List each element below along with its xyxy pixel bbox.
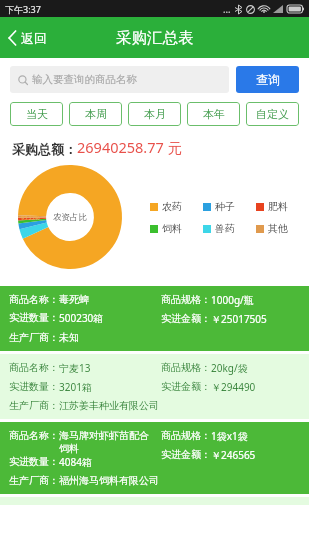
button[interactable]: 查询 bbox=[236, 66, 299, 93]
staticText: ￥246565 bbox=[211, 448, 256, 462]
staticText: ￥25017505 bbox=[211, 312, 267, 326]
staticText: 兽药 bbox=[215, 222, 235, 235]
staticText: 生产厂商： bbox=[9, 474, 59, 487]
staticText: 500230箱 bbox=[59, 311, 104, 325]
staticText: 采购总额： bbox=[12, 141, 77, 157]
staticText: 生产厂商： bbox=[9, 399, 59, 412]
staticText: 商品名称： bbox=[9, 429, 59, 442]
staticText: 未知 bbox=[59, 331, 79, 344]
staticText: 农资占比 bbox=[53, 212, 87, 223]
button[interactable]: 输入要查询的商品名称 bbox=[10, 66, 229, 93]
staticText: 肥料 bbox=[268, 200, 288, 213]
staticText: 宁麦13 bbox=[59, 361, 91, 375]
staticText: 本周 bbox=[85, 107, 107, 121]
staticText: 下午3:37 bbox=[5, 3, 41, 15]
staticText: 福州海马饲料有限公司 bbox=[59, 474, 159, 487]
staticText: 实进数量： bbox=[9, 311, 59, 324]
staticText: 4084箱 bbox=[59, 455, 92, 469]
staticText: 种子 bbox=[215, 200, 235, 213]
staticText: 输入要查询的商品名称 bbox=[32, 73, 137, 86]
button[interactable]: 本年 bbox=[187, 102, 240, 126]
staticText: 毒死蜱 bbox=[59, 293, 89, 306]
staticText: 返回 bbox=[21, 30, 47, 46]
staticText: 实进数量： bbox=[9, 455, 59, 468]
staticText: 饲料 bbox=[162, 222, 182, 235]
button[interactable]: 本周 bbox=[69, 102, 122, 126]
staticText: ... bbox=[223, 3, 231, 15]
staticText: ￥294490 bbox=[211, 380, 256, 394]
button[interactable]: 自定义 bbox=[246, 102, 299, 126]
staticText: 实进金额： bbox=[161, 380, 211, 393]
staticText: 商品规格： bbox=[161, 361, 211, 374]
staticText: 实进数量： bbox=[9, 380, 59, 393]
staticText: 其他 bbox=[268, 222, 288, 235]
staticText: 本月 bbox=[144, 107, 166, 121]
staticText: 1袋x1袋 bbox=[211, 429, 248, 443]
button[interactable]: 商品名称： bbox=[0, 286, 309, 351]
staticText: 商品规格： bbox=[161, 293, 211, 306]
button[interactable]: 返回 bbox=[0, 24, 57, 52]
staticText: 3201箱 bbox=[59, 380, 92, 394]
staticText: 自定义 bbox=[256, 107, 289, 121]
staticText: 农药 bbox=[162, 200, 182, 213]
staticText: 商品名称： bbox=[9, 361, 59, 374]
staticText: 采购汇总表 bbox=[116, 28, 194, 48]
staticText: 查询 bbox=[256, 72, 280, 87]
staticText: 实进金额： bbox=[161, 312, 211, 325]
button[interactable]: 本月 bbox=[128, 102, 181, 126]
staticText: 生产厂商： bbox=[9, 331, 59, 344]
button[interactable]: 商品名称： bbox=[0, 354, 309, 419]
staticText: 20kg/袋 bbox=[211, 361, 248, 375]
staticText: 商品名称： bbox=[9, 293, 59, 306]
staticText: 实进金额： bbox=[161, 448, 211, 461]
staticText: 本年 bbox=[203, 107, 225, 121]
button[interactable]: 商品名称： bbox=[0, 422, 309, 494]
staticText: 海马牌对虾虾苗配合 饲料 bbox=[59, 429, 149, 455]
staticText: 江苏姜丰种业有限公司 bbox=[59, 399, 159, 412]
staticText: 商品规格： bbox=[161, 429, 211, 442]
staticText: 93.22% bbox=[21, 214, 40, 221]
button[interactable]: 当天 bbox=[10, 102, 63, 126]
staticText: 当天 bbox=[26, 107, 48, 121]
staticText: 26940258.77 元 bbox=[77, 137, 183, 157]
staticText: 1000g/瓶 bbox=[211, 293, 254, 307]
